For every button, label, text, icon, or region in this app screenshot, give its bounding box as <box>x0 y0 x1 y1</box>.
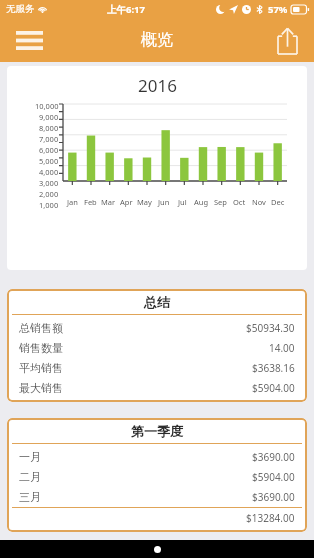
staticText: 二月 <box>19 470 41 484</box>
staticText: 4,000 <box>39 167 59 177</box>
staticText: $5904.00 <box>252 470 295 484</box>
staticText: $50934.30 <box>246 321 295 335</box>
button[interactable]: 销售数量 <box>7 338 307 358</box>
button[interactable]: 最大销售 <box>7 378 307 398</box>
button[interactable]: Share <box>268 21 306 59</box>
staticText: Dec <box>271 197 285 207</box>
staticText: 销售数量 <box>19 341 63 355</box>
staticText: 总结 <box>144 294 170 310</box>
staticText: 14.00 <box>269 341 295 355</box>
staticText: Nov <box>252 197 266 207</box>
staticText: $3638.16 <box>252 361 295 375</box>
staticText: Jun <box>158 197 170 207</box>
staticText: 1,000 <box>39 200 59 210</box>
staticText: 7,000 <box>39 134 59 144</box>
button[interactable]: $13284.00 <box>7 508 307 528</box>
staticText: $3690.00 <box>252 490 295 504</box>
staticText: 6,000 <box>39 145 59 155</box>
staticText: Feb <box>84 197 97 207</box>
staticText: Oct <box>233 197 246 207</box>
staticText: May <box>137 197 152 207</box>
staticText: $3690.00 <box>252 450 295 464</box>
staticText: 10,000 <box>35 101 59 111</box>
staticText: 2,000 <box>39 189 59 199</box>
staticText: Sep <box>214 197 227 207</box>
staticText: 最大销售 <box>19 381 63 395</box>
staticText: 上午6:17 <box>107 3 145 16</box>
staticText: $5904.00 <box>252 381 295 395</box>
staticText: 5,000 <box>39 156 59 166</box>
staticText: Mar <box>101 197 116 207</box>
staticText: 3,000 <box>39 178 59 188</box>
staticText: 8,000 <box>39 123 59 133</box>
staticText: 第一季度 <box>131 423 183 439</box>
staticText: 概览 <box>141 30 173 50</box>
staticText: 无服务 <box>6 3 35 15</box>
button[interactable]: 平均销售 <box>7 358 307 378</box>
staticText: 9,000 <box>39 112 59 122</box>
staticText: 平均销售 <box>19 361 63 375</box>
button[interactable]: 二月 <box>7 467 307 487</box>
staticText: Aug <box>194 197 209 207</box>
staticText: 57% <box>268 3 288 16</box>
button[interactable]: 总销售额 <box>7 318 307 338</box>
staticText: 一月 <box>19 450 41 464</box>
staticText: 2016 <box>138 74 177 97</box>
button[interactable]: 三月 <box>7 487 307 507</box>
staticText: Jan <box>67 197 78 207</box>
staticText: Apr <box>120 197 133 207</box>
staticText: 总销售额 <box>19 321 63 335</box>
staticText: 三月 <box>19 490 41 504</box>
button[interactable]: 一月 <box>7 447 307 467</box>
button[interactable]: Menu <box>10 21 48 59</box>
staticText: Jul <box>178 197 187 207</box>
staticText: $13284.00 <box>246 511 295 525</box>
